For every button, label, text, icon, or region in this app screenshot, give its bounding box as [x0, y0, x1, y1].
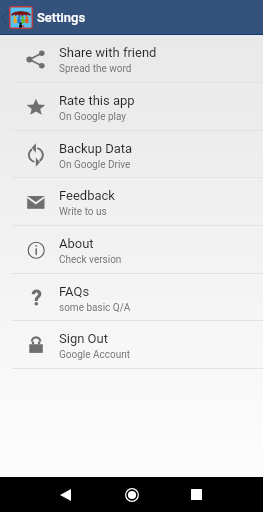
other: Backup data [25, 143, 47, 165]
button[interactable]: Feedback [0, 178, 263, 225]
button[interactable]: Home [116, 479, 147, 510]
staticText: About [59, 236, 94, 251]
button[interactable]: FAQs [0, 274, 263, 320]
staticText: Sign Out [59, 331, 108, 346]
other: Feedback [25, 191, 47, 213]
button[interactable]: About [0, 226, 263, 273]
button[interactable]: Navigate up [0, 7, 11, 29]
button[interactable]: Backup data [0, 131, 263, 177]
other: Rate this app [25, 96, 47, 118]
staticText: Google Account [59, 349, 131, 361]
button[interactable]: Recent apps [181, 479, 212, 510]
staticText: Rate this app [59, 93, 135, 108]
button[interactable]: Share with friend [0, 35, 263, 82]
other: FAQs [25, 286, 47, 308]
staticText: Write to us [59, 206, 107, 218]
staticText: Share with friend [59, 45, 157, 60]
staticText: Check version [59, 254, 122, 266]
button[interactable]: Back [50, 479, 81, 510]
staticText: Feedback [59, 188, 115, 203]
staticText: Settings [37, 10, 86, 25]
staticText: FAQs [59, 284, 90, 299]
staticText: some basic Q/A [59, 302, 131, 314]
button[interactable]: App icon [9, 6, 33, 29]
other: About [25, 239, 47, 261]
staticText: Backup Data [59, 141, 133, 156]
staticText: On Google Drive [59, 159, 131, 171]
other: Share with friend [25, 48, 47, 70]
button[interactable]: Sign out [0, 321, 263, 368]
staticText: ? [31, 286, 42, 308]
button[interactable]: Rate this app [0, 83, 263, 130]
staticText: On Google play [59, 111, 127, 123]
staticText: Spread the word [59, 63, 132, 75]
other: Sign out [25, 334, 47, 356]
